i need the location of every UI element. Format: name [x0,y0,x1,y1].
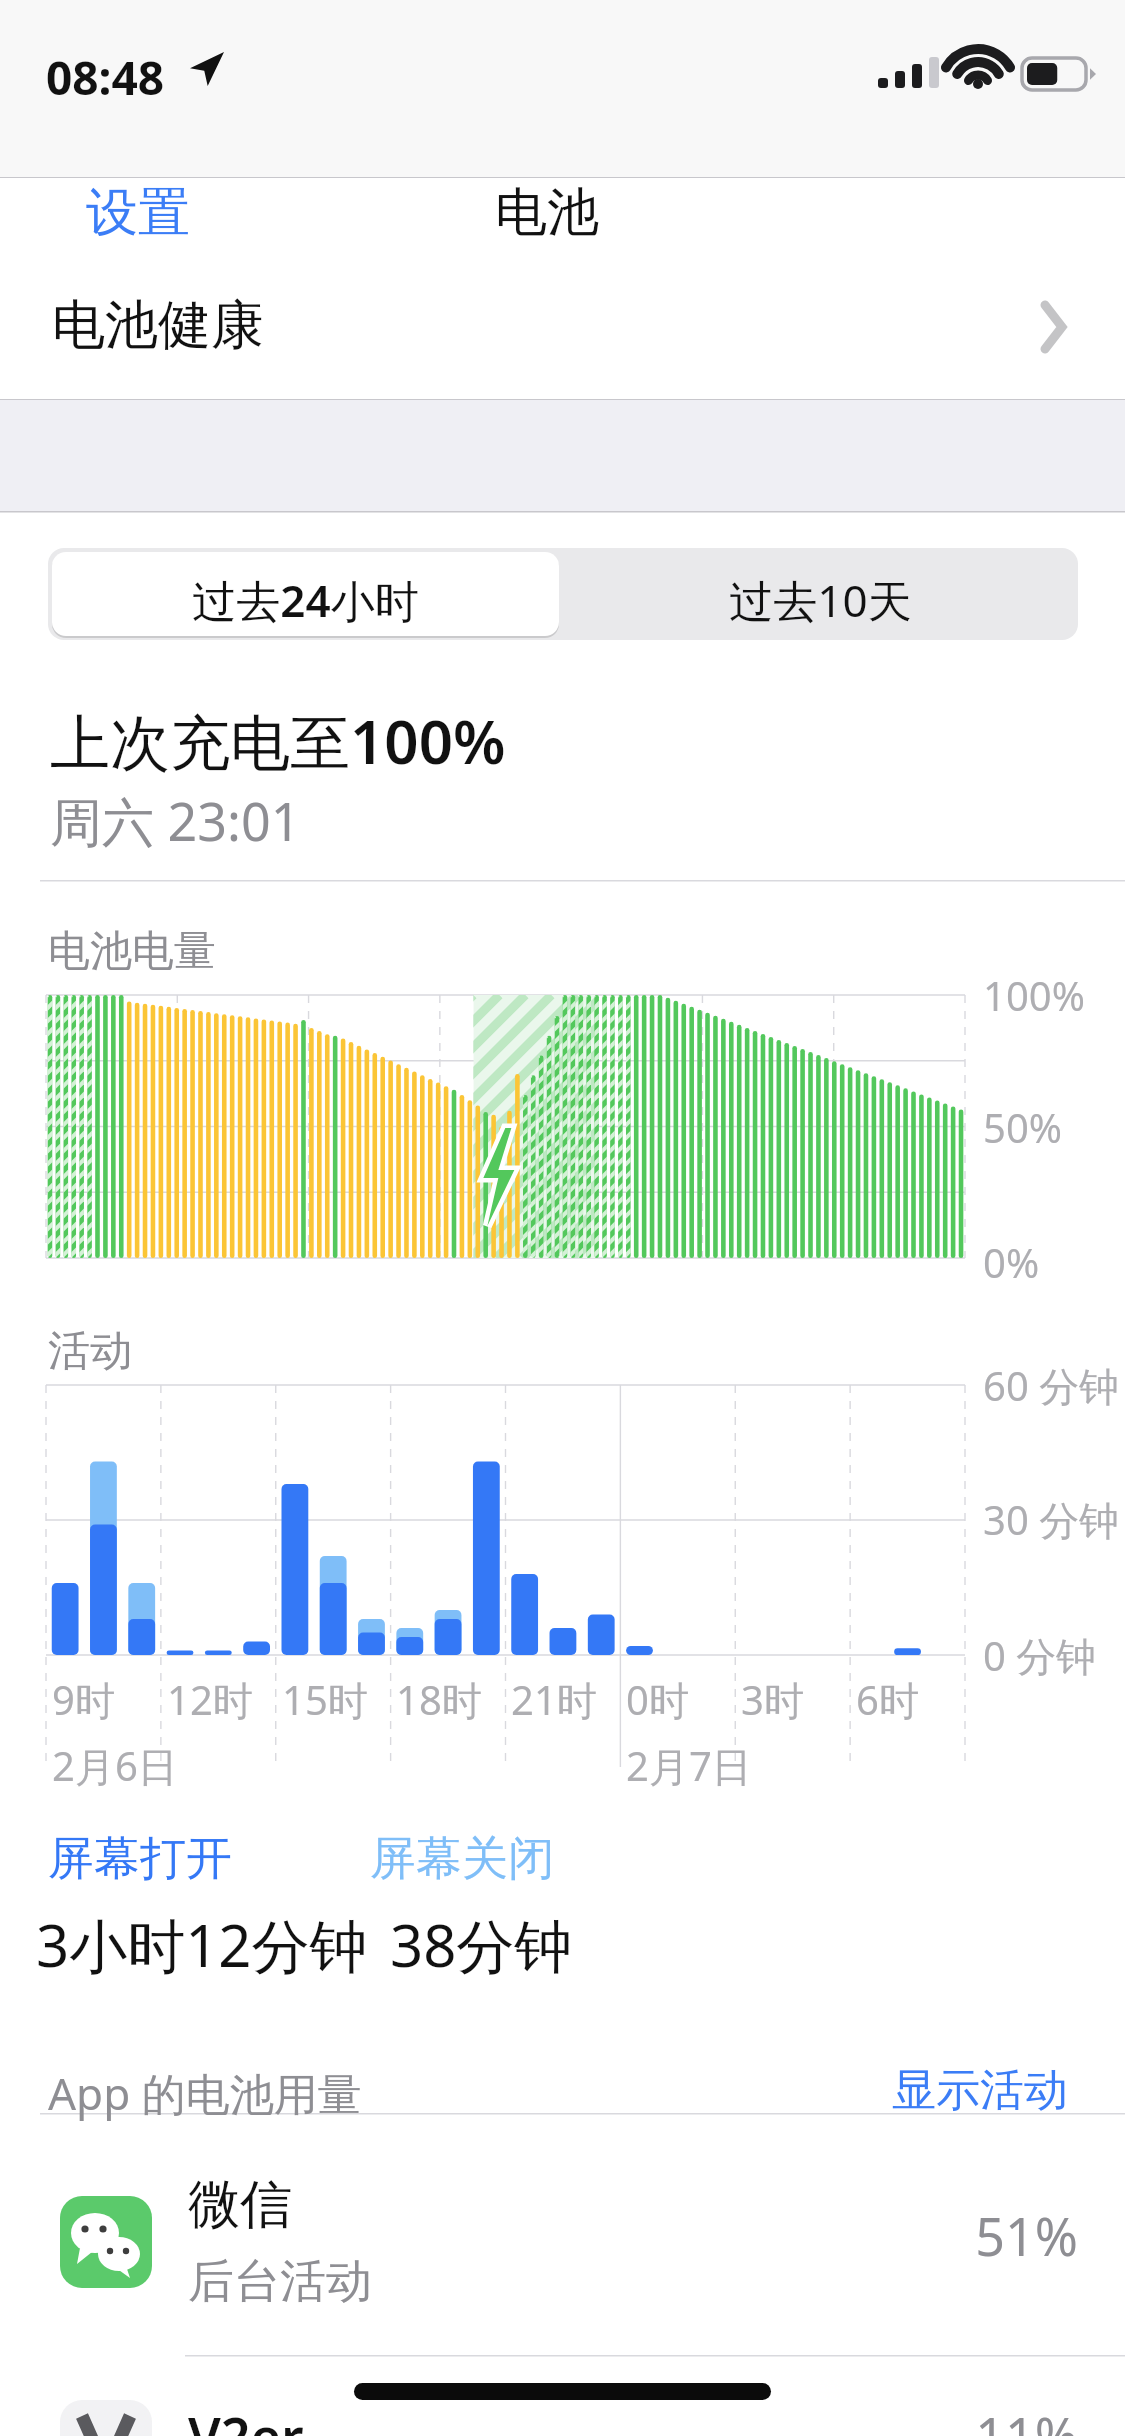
staticText: 过去24小时 [48,570,563,630]
staticText: 50% [983,1100,1062,1154]
staticText: 21时 [511,1672,597,1727]
staticText: 上次充电至100% [50,700,506,782]
button[interactable] [52,552,563,636]
button[interactable] [0,2115,1125,2355]
staticText: 显示活动 [892,2063,1068,2118]
staticText: 9时 [52,1672,115,1727]
staticText: 30 分钟 [983,1492,1120,1547]
staticText: 后台活动 [188,2253,372,2311]
staticText: 100% [983,968,1085,1022]
staticText: 2月7日 [626,1738,752,1793]
staticText: 0时 [626,1672,689,1727]
button[interactable] [0,178,1125,400]
staticText: V2er [188,2400,304,2436]
button[interactable] [563,552,1074,636]
staticText: 08:48 [46,46,165,109]
staticText: 3小时12分钟 [36,1905,368,1984]
staticText: 6时 [856,1672,919,1727]
staticText: 0% [983,1235,1040,1289]
staticText: 0 分钟 [983,1628,1097,1683]
staticText: App 的电池用量 [48,2063,362,2123]
staticText: 38分钟 [390,1905,573,1984]
staticText: 设置 [86,180,190,246]
staticText: 11% [918,2400,1078,2436]
button[interactable] [30,170,250,265]
staticText: 电池健康 [52,292,264,359]
staticText: 12时 [167,1672,253,1727]
staticText: 活动 [48,1325,132,1378]
staticText: 60 分钟 [983,1358,1120,1413]
staticText: 屏幕关闭 [370,1830,554,1888]
staticText: 过去10天 [563,570,1078,630]
staticText: 15时 [282,1672,368,1727]
staticText: 微信 [188,2172,292,2238]
staticText: 51% [918,2200,1078,2271]
staticText: 3时 [741,1672,804,1727]
staticText: 电池电量 [48,925,216,978]
staticText: 屏幕打开 [48,1830,232,1888]
staticText: 电池 [495,180,599,246]
staticText: 18时 [396,1672,482,1727]
staticText: 周六 23:01 [50,785,301,856]
button[interactable] [840,2048,1090,2124]
staticText: 2月6日 [52,1738,178,1793]
button[interactable] [0,2357,1125,2436]
